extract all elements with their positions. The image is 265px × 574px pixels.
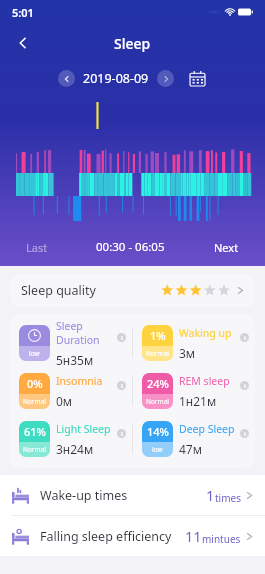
- staticText: i: [244, 430, 246, 438]
- staticText: 3н24м: [56, 441, 94, 457]
- button[interactable]: 1%: [133, 319, 255, 367]
- staticText: Normal: [23, 397, 46, 406]
- staticText: Falling sleep efficiency: [40, 528, 172, 545]
- staticText: times: [215, 491, 241, 505]
- button[interactable]: Falling sleep efficiency: [0, 516, 265, 556]
- staticText: 0%: [27, 376, 43, 391]
- button[interactable]: Info Light Sleep: [117, 429, 126, 438]
- staticText: 1%: [150, 328, 166, 343]
- staticText: 5:01: [12, 5, 34, 20]
- staticText: REM sleep: [179, 374, 230, 388]
- button[interactable]: low: [10, 319, 132, 367]
- staticText: Sleep quality: [21, 282, 96, 299]
- button[interactable]: Wake-up times: [0, 475, 265, 515]
- staticText: low: [152, 445, 163, 454]
- staticText: mintues: [202, 532, 241, 546]
- staticText: i: [121, 430, 123, 438]
- staticText: 1н21м: [179, 393, 217, 409]
- staticText: 00:30 - 06:05: [96, 239, 165, 255]
- button[interactable]: Previous day: [58, 70, 75, 87]
- staticText: Insomnia: [56, 374, 103, 388]
- button[interactable]: Sleep quality: [10, 274, 255, 307]
- staticText: low: [29, 349, 40, 358]
- staticText: Waking up: [179, 326, 232, 340]
- staticText: i: [121, 334, 123, 342]
- staticText: 1: [206, 485, 215, 505]
- staticText: Last: [26, 240, 48, 255]
- button[interactable]: Back: [6, 26, 40, 60]
- button[interactable]: Last: [26, 240, 48, 255]
- button[interactable]: 24%: [133, 367, 255, 415]
- button[interactable]: Info Insomnia: [117, 381, 126, 390]
- staticText: 2019-08-09: [83, 70, 149, 87]
- button[interactable]: Next day: [157, 70, 174, 87]
- staticText: Sleep Duration: [56, 319, 117, 347]
- button[interactable]: Info Sleep Duration: [117, 333, 126, 342]
- staticText: i: [244, 382, 246, 390]
- staticText: 5н35м: [56, 352, 94, 367]
- staticText: 61%: [24, 424, 46, 439]
- staticText: 24%: [147, 376, 169, 391]
- staticText: Deep Sleep: [179, 422, 235, 436]
- button[interactable]: Info Waking up: [240, 333, 249, 342]
- staticText: Normal: [146, 349, 169, 358]
- staticText: Next: [214, 240, 239, 255]
- button[interactable]: 61%: [10, 415, 132, 463]
- staticText: Sleep: [114, 34, 151, 53]
- button[interactable]: Calendar: [186, 67, 208, 89]
- staticText: 11: [185, 526, 202, 546]
- staticText: Light Sleep: [56, 422, 111, 436]
- staticText: i: [244, 334, 246, 342]
- button[interactable]: 14%: [133, 415, 255, 463]
- staticText: i: [121, 382, 123, 390]
- button[interactable]: Next: [214, 240, 239, 255]
- staticText: 3м: [179, 345, 196, 361]
- button[interactable]: 0%: [10, 367, 132, 415]
- staticText: Normal: [23, 445, 46, 454]
- staticText: 0м: [56, 393, 73, 409]
- staticText: 47м: [179, 441, 202, 457]
- button[interactable]: Info Deep Sleep: [240, 429, 249, 438]
- staticText: Normal: [146, 397, 169, 406]
- button[interactable]: Info REM sleep: [240, 381, 249, 390]
- staticText: Wake-up times: [40, 487, 128, 504]
- staticText: 14%: [147, 424, 169, 439]
